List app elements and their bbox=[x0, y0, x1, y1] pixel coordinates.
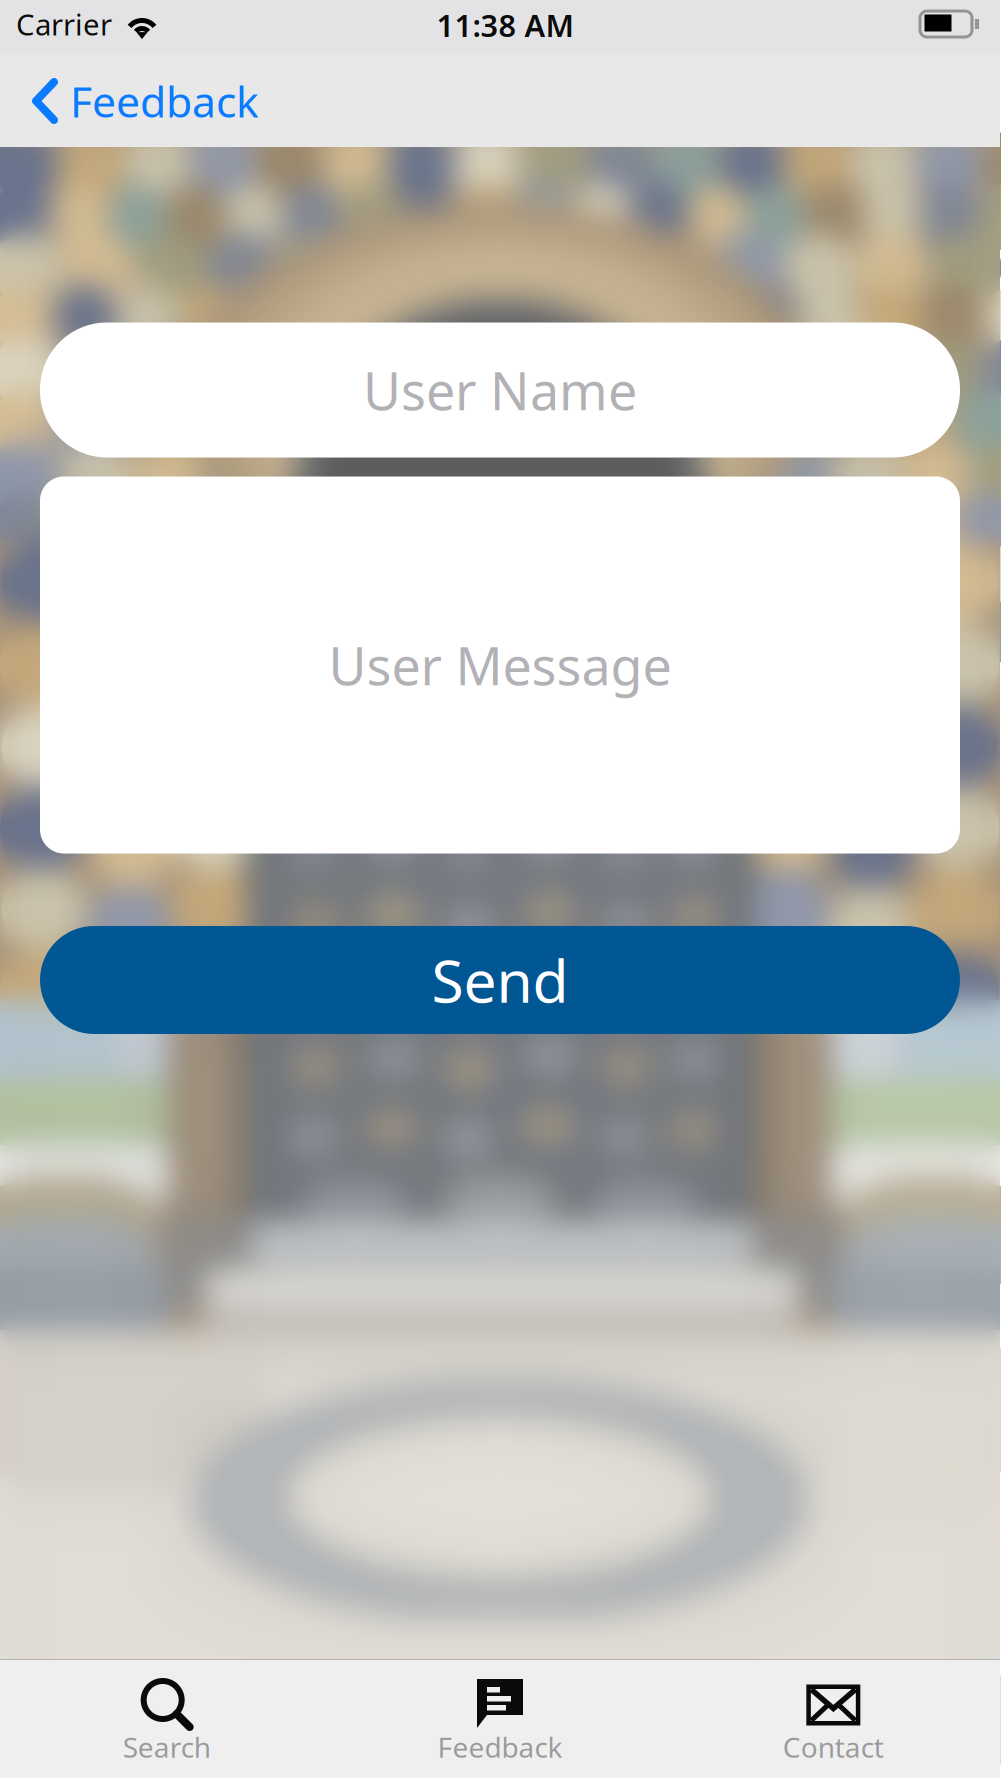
staticText: User Name bbox=[363, 355, 637, 425]
button[interactable]: Feedback bbox=[0, 55, 1000, 147]
staticText: Feedback bbox=[437, 1728, 562, 1766]
button[interactable]: Send bbox=[40, 926, 960, 1034]
staticText: Carrier bbox=[16, 4, 112, 43]
staticText: Send bbox=[431, 941, 568, 1019]
button[interactable]: Search bbox=[0, 1659, 333, 1778]
button[interactable]: Contact bbox=[667, 1659, 1000, 1778]
button[interactable]: User Message bbox=[40, 476, 960, 853]
button[interactable]: User Name bbox=[40, 322, 960, 457]
staticText: Contact bbox=[783, 1728, 884, 1766]
staticText: User Message bbox=[328, 630, 671, 700]
staticText: 11:38 AM bbox=[436, 5, 573, 45]
staticText: Search bbox=[123, 1728, 211, 1766]
staticText: Feedback bbox=[70, 73, 259, 129]
button[interactable]: Feedback bbox=[333, 1659, 667, 1778]
